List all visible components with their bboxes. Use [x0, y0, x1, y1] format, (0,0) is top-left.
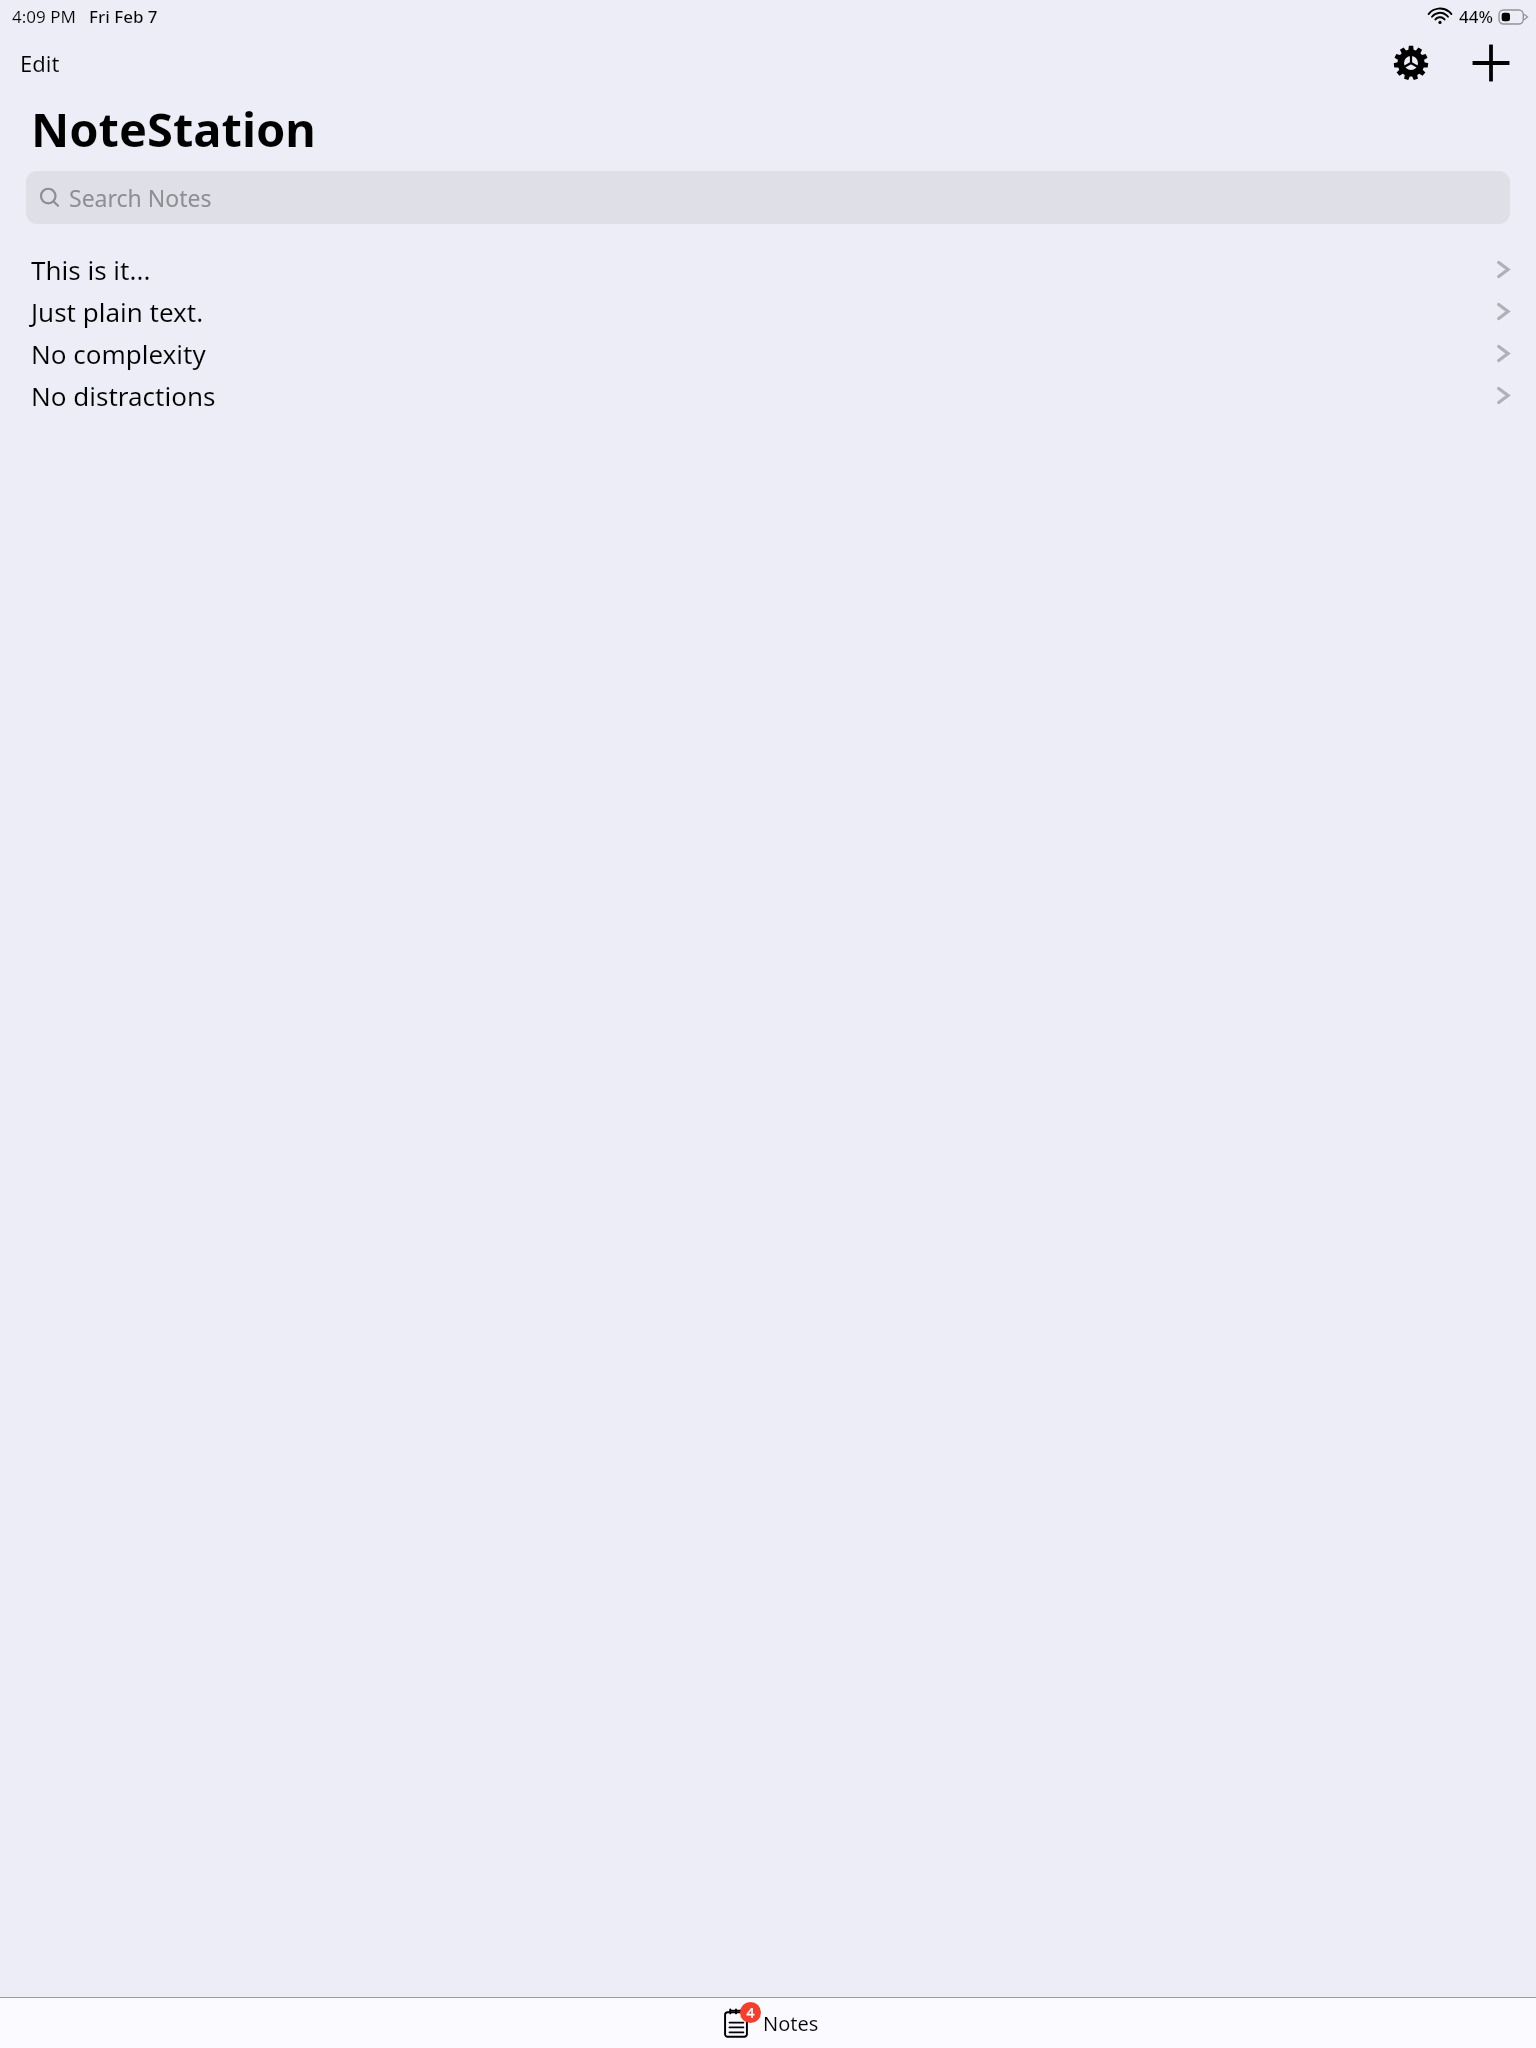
- staticText: Search Notes: [69, 182, 212, 213]
- staticText: No complexity: [31, 336, 206, 371]
- button[interactable]: Just plain text.: [0, 290, 1536, 332]
- staticText: NoteStation: [31, 97, 316, 161]
- staticText: 4:09 PM: [12, 5, 76, 28]
- button[interactable]: No complexity: [0, 332, 1536, 374]
- staticText: 44%: [1459, 5, 1493, 28]
- staticText: Notes: [763, 2010, 819, 2037]
- button[interactable]: Search Notes: [26, 171, 1510, 224]
- button[interactable]: This is it...: [0, 248, 1536, 290]
- staticText: This is it...: [31, 252, 151, 287]
- button[interactable]: No distractions: [0, 374, 1536, 416]
- staticText: Fri Feb 7: [89, 5, 158, 28]
- button[interactable]: 4: [702, 2002, 835, 2044]
- button[interactable]: Edit: [0, 38, 80, 88]
- button[interactable]: New note: [1464, 36, 1518, 90]
- staticText: 4: [746, 2003, 755, 2022]
- staticText: Just plain text.: [31, 294, 204, 329]
- button[interactable]: Settings: [1384, 36, 1438, 90]
- staticText: Edit: [20, 48, 60, 78]
- staticText: No distractions: [31, 378, 216, 413]
